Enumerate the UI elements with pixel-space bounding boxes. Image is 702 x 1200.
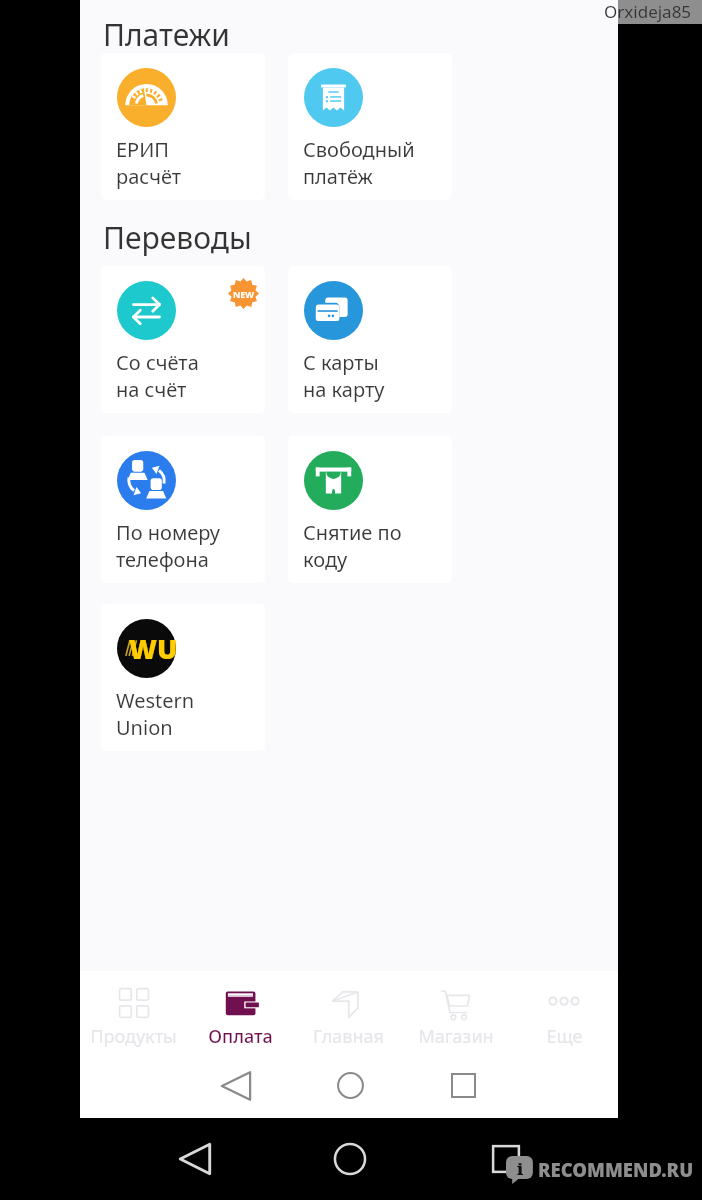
button[interactable]: Снятие по: [288, 436, 452, 583]
button[interactable]: Оплата: [187, 971, 294, 1060]
staticText: ЕРИП: [116, 136, 169, 163]
staticText: Оплата: [208, 1024, 273, 1049]
staticText: RECOMMEND.RU: [538, 1157, 694, 1182]
button[interactable]: Магазин: [402, 971, 510, 1060]
staticText: Со счёта: [116, 349, 199, 376]
staticText: Еще: [546, 1024, 583, 1049]
staticText: телефона: [116, 546, 209, 573]
staticText: Продукты: [90, 1024, 177, 1049]
button[interactable]: Home: [334, 1143, 366, 1175]
button[interactable]: С карты: [288, 266, 452, 413]
staticText: Union: [116, 714, 173, 741]
staticText: платёж: [303, 163, 373, 190]
staticText: WU: [129, 630, 178, 667]
staticText: на счёт: [116, 376, 187, 403]
staticText: Переводы: [103, 217, 252, 258]
button[interactable]: Свободный: [288, 53, 452, 200]
staticText: Главная: [313, 1024, 384, 1049]
button[interactable]: Главная: [294, 971, 402, 1060]
staticText: Western: [116, 687, 195, 714]
staticText: NEW: [233, 288, 255, 300]
button[interactable]: ЕРИП: [101, 53, 265, 200]
button[interactable]: По номеру: [101, 436, 265, 583]
button[interactable]: Со счёта: [101, 266, 265, 413]
staticText: расчёт: [116, 163, 182, 190]
button[interactable]: Recents: [451, 1073, 476, 1098]
staticText: коду: [303, 546, 348, 573]
staticText: Свободный: [303, 136, 415, 163]
staticText: Платежи: [103, 14, 230, 55]
button[interactable]: WU: [101, 604, 265, 751]
staticText: По номеру: [116, 519, 221, 546]
staticText: на карту: [303, 376, 385, 403]
staticText: Orxideja85: [604, 0, 692, 23]
button[interactable]: Recents: [492, 1145, 520, 1173]
staticText: i: [517, 1157, 524, 1180]
staticText: Снятие по: [303, 519, 402, 546]
button[interactable]: Еще: [510, 971, 618, 1060]
staticText: С карты: [303, 349, 379, 376]
button[interactable]: Back: [221, 1071, 251, 1101]
button[interactable]: Back: [179, 1143, 211, 1175]
button[interactable]: Продукты: [80, 971, 187, 1060]
button[interactable]: Home: [337, 1072, 364, 1099]
staticText: Магазин: [418, 1024, 494, 1049]
